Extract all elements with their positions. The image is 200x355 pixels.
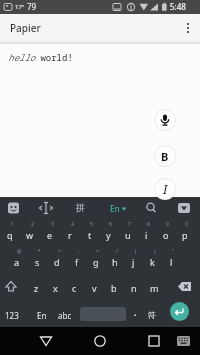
button[interactable]: n: [124, 273, 144, 300]
button[interactable]: [0, 273, 28, 300]
staticText: 79: [27, 1, 37, 12]
staticText: 6: [109, 221, 112, 228]
button[interactable]: b: [104, 273, 124, 300]
button[interactable]: 0: [175, 219, 194, 246]
staticText: hello world!: [8, 51, 73, 63]
staticText: 4: [71, 221, 74, 228]
staticText: o: [163, 229, 169, 241]
staticText: 1: [11, 221, 14, 228]
staticText: b: [111, 282, 117, 294]
button[interactable]: 6: [99, 219, 118, 246]
button[interactable]: +: [47, 246, 67, 273]
staticText: c: [72, 282, 77, 294]
button[interactable]: 1: [0, 219, 20, 246]
button[interactable]: [180, 18, 200, 38]
staticText: u: [125, 229, 131, 241]
staticText: t: [88, 229, 92, 241]
button[interactable]: B: [154, 145, 176, 167]
staticText: m: [150, 282, 159, 294]
button[interactable]: 7: [118, 219, 137, 246]
staticText: =: [96, 248, 99, 255]
staticText: y: [106, 229, 111, 241]
button[interactable]: En: [37, 310, 47, 321]
staticText: i: [145, 229, 148, 241]
staticText: Papier: [10, 21, 41, 35]
staticText: 2: [31, 221, 34, 228]
staticText: 8: [147, 221, 150, 228]
staticText: 3: [51, 221, 54, 228]
button[interactable]: abc: [58, 310, 72, 321]
button[interactable]: 123: [5, 310, 19, 321]
staticText: +: [58, 248, 61, 255]
staticText: -: [78, 248, 80, 255]
staticText: s: [35, 256, 40, 268]
staticText: 拼: [76, 202, 85, 213]
staticText: /: [116, 248, 118, 255]
button[interactable]: [172, 273, 200, 300]
staticText: En: [110, 203, 120, 214]
button[interactable]: x: [46, 273, 65, 300]
button[interactable]: 3: [40, 219, 60, 246]
button[interactable]: [170, 302, 189, 321]
button[interactable]: *: [27, 246, 47, 273]
staticText: 5: [90, 221, 93, 228]
button[interactable]: (: [124, 246, 143, 273]
button[interactable]: [86, 327, 114, 355]
staticText: v: [92, 282, 97, 294]
button[interactable]: [176, 333, 192, 349]
staticText: g: [93, 256, 99, 268]
staticText: 17°: [15, 3, 25, 11]
staticText: n: [131, 282, 137, 294]
staticText: (: [135, 248, 137, 255]
button[interactable]: [140, 327, 168, 355]
staticText: x: [53, 282, 58, 294]
staticText: q: [7, 229, 13, 241]
staticText: r: [68, 229, 72, 241]
button[interactable]: 4: [60, 219, 80, 246]
staticText: e: [47, 229, 53, 241]
button[interactable]: .: [134, 306, 137, 318]
staticText: ): [154, 248, 156, 255]
staticText: ": [172, 248, 175, 255]
button[interactable]: ": [162, 246, 181, 273]
button[interactable]: z: [27, 273, 46, 300]
button[interactable]: 8: [137, 219, 156, 246]
staticText: 7: [128, 221, 131, 228]
staticText: 0: [185, 221, 188, 228]
staticText: h: [112, 256, 118, 268]
staticText: a: [14, 256, 20, 268]
staticText: B: [161, 149, 169, 164]
staticText: j: [132, 256, 135, 268]
button[interactable]: ): [143, 246, 162, 273]
staticText: z: [34, 282, 39, 294]
button[interactable]: 符: [148, 310, 156, 320]
staticText: 9: [166, 221, 169, 228]
staticText: w: [26, 229, 34, 241]
button[interactable]: /: [105, 246, 124, 273]
staticText: f: [75, 256, 79, 268]
button[interactable]: -: [67, 246, 86, 273]
staticText: k: [150, 256, 155, 268]
button[interactable]: [32, 327, 60, 355]
button[interactable]: =: [86, 246, 105, 273]
button[interactable]: m: [144, 273, 164, 300]
button[interactable]: [154, 109, 176, 131]
button[interactable]: I: [154, 178, 176, 200]
button[interactable]: @: [7, 246, 27, 273]
button[interactable]: 9: [156, 219, 175, 246]
button[interactable]: 5: [80, 219, 99, 246]
button[interactable]: 2: [20, 219, 40, 246]
staticText: p: [182, 229, 188, 241]
staticText: I: [163, 181, 168, 197]
staticText: @: [17, 248, 22, 255]
staticText: l: [170, 256, 173, 268]
button[interactable]: v: [84, 273, 104, 300]
staticText: 5:48: [170, 1, 186, 12]
staticText: d: [54, 256, 60, 268]
button[interactable]: c: [65, 273, 84, 300]
staticText: *: [38, 248, 41, 255]
